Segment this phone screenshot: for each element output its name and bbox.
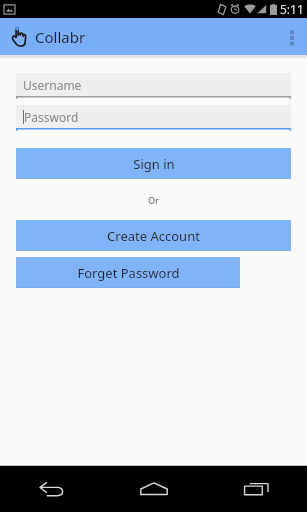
button[interactable]: Forget Password <box>16 257 240 288</box>
button[interactable]: Back <box>0 466 103 512</box>
button[interactable]: Sign in <box>16 148 291 179</box>
button[interactable]: Username <box>16 73 291 99</box>
staticText: Sign in <box>133 155 175 173</box>
staticText: Create Account <box>107 227 200 245</box>
staticText: Or <box>148 194 159 206</box>
button[interactable]: Home <box>103 466 205 512</box>
button[interactable]: More options <box>277 18 307 55</box>
staticText: Password <box>24 109 79 125</box>
button[interactable]: Password <box>16 105 291 131</box>
staticText: Forget Password <box>77 264 180 282</box>
staticText: Username <box>23 77 82 93</box>
staticText: Collabr <box>35 27 86 47</box>
staticText: 5:11 <box>280 1 304 17</box>
button[interactable]: Recent apps <box>205 466 307 512</box>
button[interactable]: Create Account <box>16 220 291 251</box>
